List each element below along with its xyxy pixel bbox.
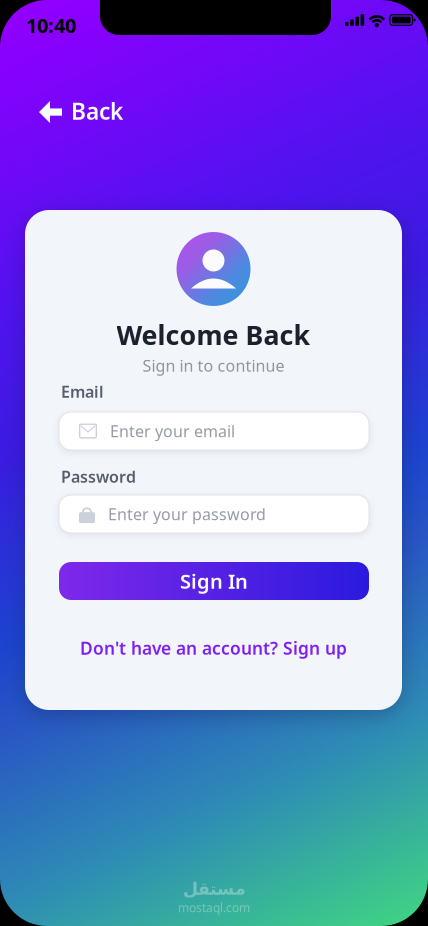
- button[interactable]: Sign In: [59, 562, 369, 600]
- button[interactable]: Back: [29, 88, 133, 136]
- staticText: Email: [61, 381, 104, 402]
- staticText: Don't have an account? Sign up: [80, 636, 347, 659]
- staticText: مستقل: [182, 879, 245, 899]
- staticText: Password: [61, 466, 136, 487]
- staticText: mostaql.com: [178, 900, 250, 916]
- staticText: Welcome Back: [116, 317, 310, 352]
- staticText: Enter your email: [110, 420, 235, 442]
- staticText: Back: [71, 96, 123, 126]
- staticText: Sign in to continue: [142, 355, 284, 376]
- staticText: 10:40: [26, 12, 76, 39]
- button[interactable]: Don't have an account? Sign up: [25, 636, 402, 660]
- staticText: Enter your password: [108, 503, 266, 525]
- staticText: Sign In: [180, 568, 248, 594]
